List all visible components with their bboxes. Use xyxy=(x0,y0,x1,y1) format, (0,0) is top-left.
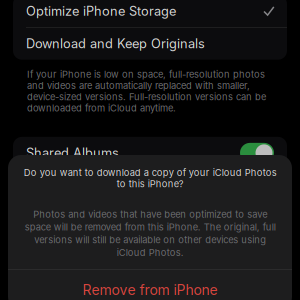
button[interactable]: Optimize iPhone Storage xyxy=(13,0,287,27)
staticText: Shared Albums xyxy=(26,145,119,161)
staticText: Remove from iPhone xyxy=(82,281,217,298)
button[interactable]: Remove from iPhone xyxy=(8,270,292,300)
staticText: Do you want to download a copy of your i… xyxy=(23,167,276,190)
staticText: Optimize iPhone Storage xyxy=(26,3,176,19)
staticText: If your iPhone is low on space, full-res… xyxy=(27,69,266,114)
staticText: Photos and videos that have been optimiz… xyxy=(24,209,275,258)
staticText: Download and Keep Originals xyxy=(26,36,205,51)
button[interactable]: Download and Keep Originals xyxy=(13,28,287,60)
